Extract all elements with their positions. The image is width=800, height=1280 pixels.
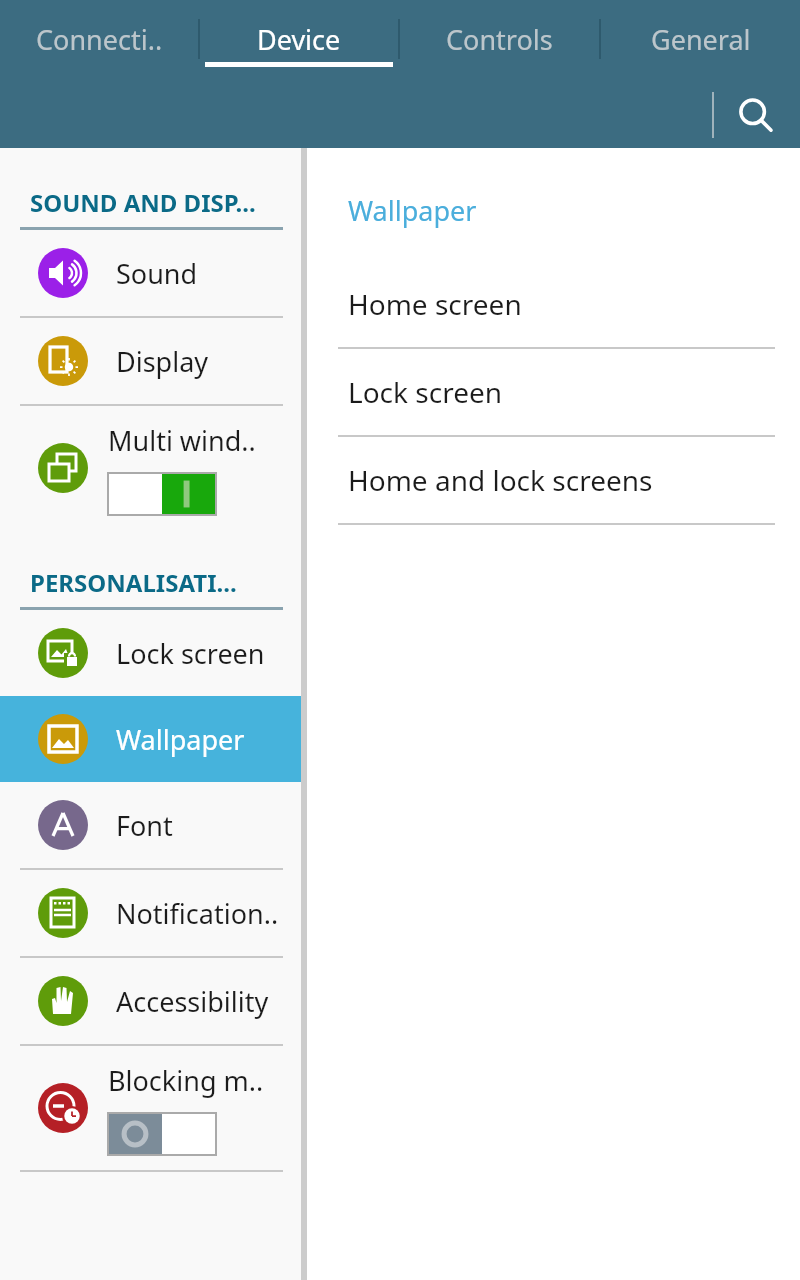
- staticText: Multi wind..: [108, 422, 256, 459]
- staticText: Wallpaper: [116, 721, 245, 758]
- staticText: Font: [116, 807, 173, 844]
- button[interactable]: Display: [0, 318, 301, 404]
- button[interactable]: Blocking m..: [0, 1046, 301, 1170]
- button[interactable]: Accessibility: [0, 958, 301, 1044]
- staticText: Wallpaper: [348, 192, 477, 229]
- staticText: Lock screen: [116, 635, 265, 672]
- button[interactable]: Controls: [400, 0, 599, 78]
- staticText: Accessibility: [116, 983, 269, 1020]
- button[interactable]: Sound: [0, 230, 301, 316]
- staticText: SOUND AND DISP...: [30, 186, 256, 219]
- button[interactable]: Notification..: [0, 870, 301, 956]
- staticText: Controls: [446, 21, 553, 58]
- staticText: Connecti..: [36, 21, 163, 58]
- button[interactable]: Wallpaper: [0, 696, 301, 782]
- staticText: General: [651, 21, 751, 58]
- staticText: Home screen: [348, 285, 522, 323]
- button[interactable]: Home and lock screens: [307, 437, 800, 523]
- button[interactable]: Device: [200, 0, 398, 78]
- staticText: PERSONALISATI...: [30, 566, 237, 599]
- staticText: Sound: [116, 255, 198, 292]
- button[interactable]: General: [601, 0, 800, 78]
- button[interactable]: Connecti..: [0, 0, 198, 78]
- staticText: Lock screen: [348, 373, 503, 411]
- button[interactable]: Search: [726, 86, 786, 146]
- button[interactable]: Font: [0, 782, 301, 868]
- button[interactable]: Multi wind..: [0, 406, 301, 530]
- button[interactable]: Lock screen: [0, 610, 301, 696]
- staticText: Device: [257, 21, 341, 58]
- staticText: Blocking m..: [108, 1062, 264, 1099]
- button[interactable]: Home screen: [307, 261, 800, 347]
- staticText: Home and lock screens: [348, 461, 653, 499]
- button[interactable]: Lock screen: [307, 349, 800, 435]
- staticText: Notification..: [116, 895, 279, 932]
- staticText: Display: [116, 343, 209, 380]
